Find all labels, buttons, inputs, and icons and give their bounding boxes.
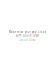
staticText: Liquid Glass <box>19 38 35 42</box>
staticText: Modernize your app's look with Liquid Gl… <box>8 30 45 37</box>
